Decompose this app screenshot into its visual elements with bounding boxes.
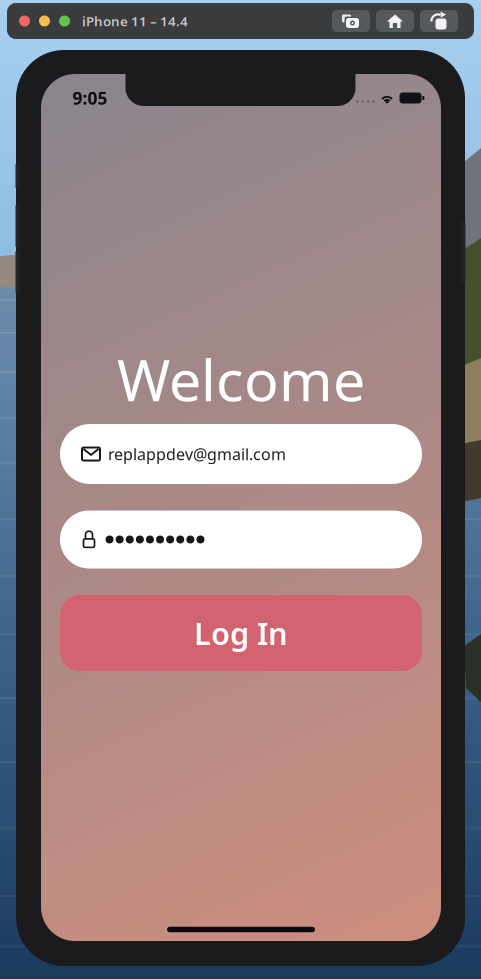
staticText: 9:05 <box>72 86 107 109</box>
staticText: Log In <box>194 613 288 653</box>
button[interactable] <box>60 510 422 568</box>
button[interactable]: Home <box>376 10 414 32</box>
button[interactable]: Log In <box>60 595 422 671</box>
button[interactable]: Rotate <box>420 10 458 32</box>
staticText: replappdev@gmail.com <box>108 443 286 465</box>
button[interactable]: Screenshot <box>332 10 370 32</box>
staticText: iPhone 11 – 14.4 <box>82 12 188 30</box>
staticText: Welcome <box>117 341 365 417</box>
button[interactable]: replappdev@gmail.com <box>60 424 422 484</box>
